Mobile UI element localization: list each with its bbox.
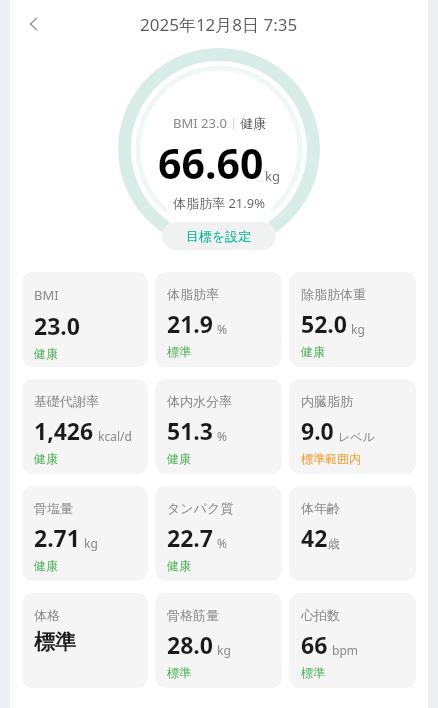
- staticText: 標準: [34, 629, 76, 655]
- staticText: 健康: [34, 558, 58, 573]
- staticText: 標準: [301, 665, 325, 680]
- staticText: 健康: [167, 558, 191, 573]
- button[interactable]: 骨格筋量: [155, 593, 282, 688]
- button[interactable]: 体格: [22, 593, 148, 688]
- staticText: 21.9: [167, 308, 213, 339]
- staticText: 66: [301, 629, 328, 660]
- staticText: 基礎代謝率: [34, 393, 99, 409]
- staticText: 体脂肪率: [167, 286, 219, 302]
- button[interactable]: 内臓脂肪: [289, 379, 416, 474]
- staticText: %: [217, 321, 227, 337]
- button[interactable]: 基礎代謝率: [22, 379, 148, 474]
- staticText: 健康: [240, 115, 266, 131]
- staticText: 体年齢: [301, 500, 340, 516]
- button[interactable]: 心拍数: [289, 593, 416, 688]
- button[interactable]: Back: [14, 4, 54, 44]
- staticText: 28.0: [167, 629, 213, 660]
- staticText: 標準: [167, 665, 191, 680]
- staticText: 心拍数: [301, 607, 340, 623]
- staticText: %: [217, 428, 227, 444]
- staticText: BMI 23.0: [173, 114, 227, 132]
- staticText: 目標を設定: [186, 228, 252, 244]
- staticText: 9.0: [301, 415, 334, 446]
- staticText: kcal/d: [98, 428, 132, 444]
- staticText: %: [217, 535, 227, 551]
- staticText: 内臓脂肪: [301, 393, 353, 409]
- staticText: 2025年12月8日 7:35: [140, 13, 298, 36]
- staticText: 23.0: [34, 310, 80, 341]
- staticText: 体内水分率: [167, 393, 232, 409]
- staticText: 健康: [301, 344, 325, 359]
- staticText: タンパク質: [167, 500, 234, 516]
- staticText: 1,426: [34, 415, 94, 446]
- staticText: 2.71: [34, 522, 80, 553]
- staticText: 体脂肪率 21.9%: [173, 194, 265, 212]
- staticText: 歳: [328, 536, 340, 551]
- button[interactable]: 除脂肪体重: [289, 272, 416, 367]
- staticText: 骨塩量: [34, 500, 73, 516]
- button[interactable]: 体内水分率: [155, 379, 282, 474]
- staticText: 標準範囲内: [301, 451, 361, 466]
- staticText: レベル: [338, 429, 375, 444]
- button[interactable]: BMI: [22, 272, 148, 367]
- staticText: 標準: [167, 344, 191, 359]
- staticText: 除脂肪体重: [301, 286, 366, 302]
- button[interactable]: 目標を設定: [162, 222, 276, 250]
- staticText: kg: [265, 167, 280, 185]
- staticText: 22.7: [167, 522, 213, 553]
- staticText: bpm: [332, 642, 358, 658]
- staticText: 健康: [167, 451, 191, 466]
- staticText: 健康: [34, 451, 58, 466]
- staticText: 51.3: [167, 415, 213, 446]
- staticText: 体格: [34, 607, 60, 623]
- button[interactable]: タンパク質: [155, 486, 282, 581]
- staticText: 52.0: [301, 308, 347, 339]
- staticText: 骨格筋量: [167, 607, 219, 623]
- button[interactable]: 体脂肪率: [155, 272, 282, 367]
- staticText: kg: [351, 321, 365, 337]
- staticText: kg: [217, 642, 231, 658]
- staticText: BMI: [34, 286, 59, 304]
- staticText: kg: [84, 535, 98, 551]
- staticText: 健康: [34, 346, 58, 361]
- button[interactable]: 骨塩量: [22, 486, 148, 581]
- staticText: 66.60: [158, 135, 264, 191]
- button[interactable]: 体年齢: [289, 486, 416, 581]
- staticText: 42: [301, 522, 328, 553]
